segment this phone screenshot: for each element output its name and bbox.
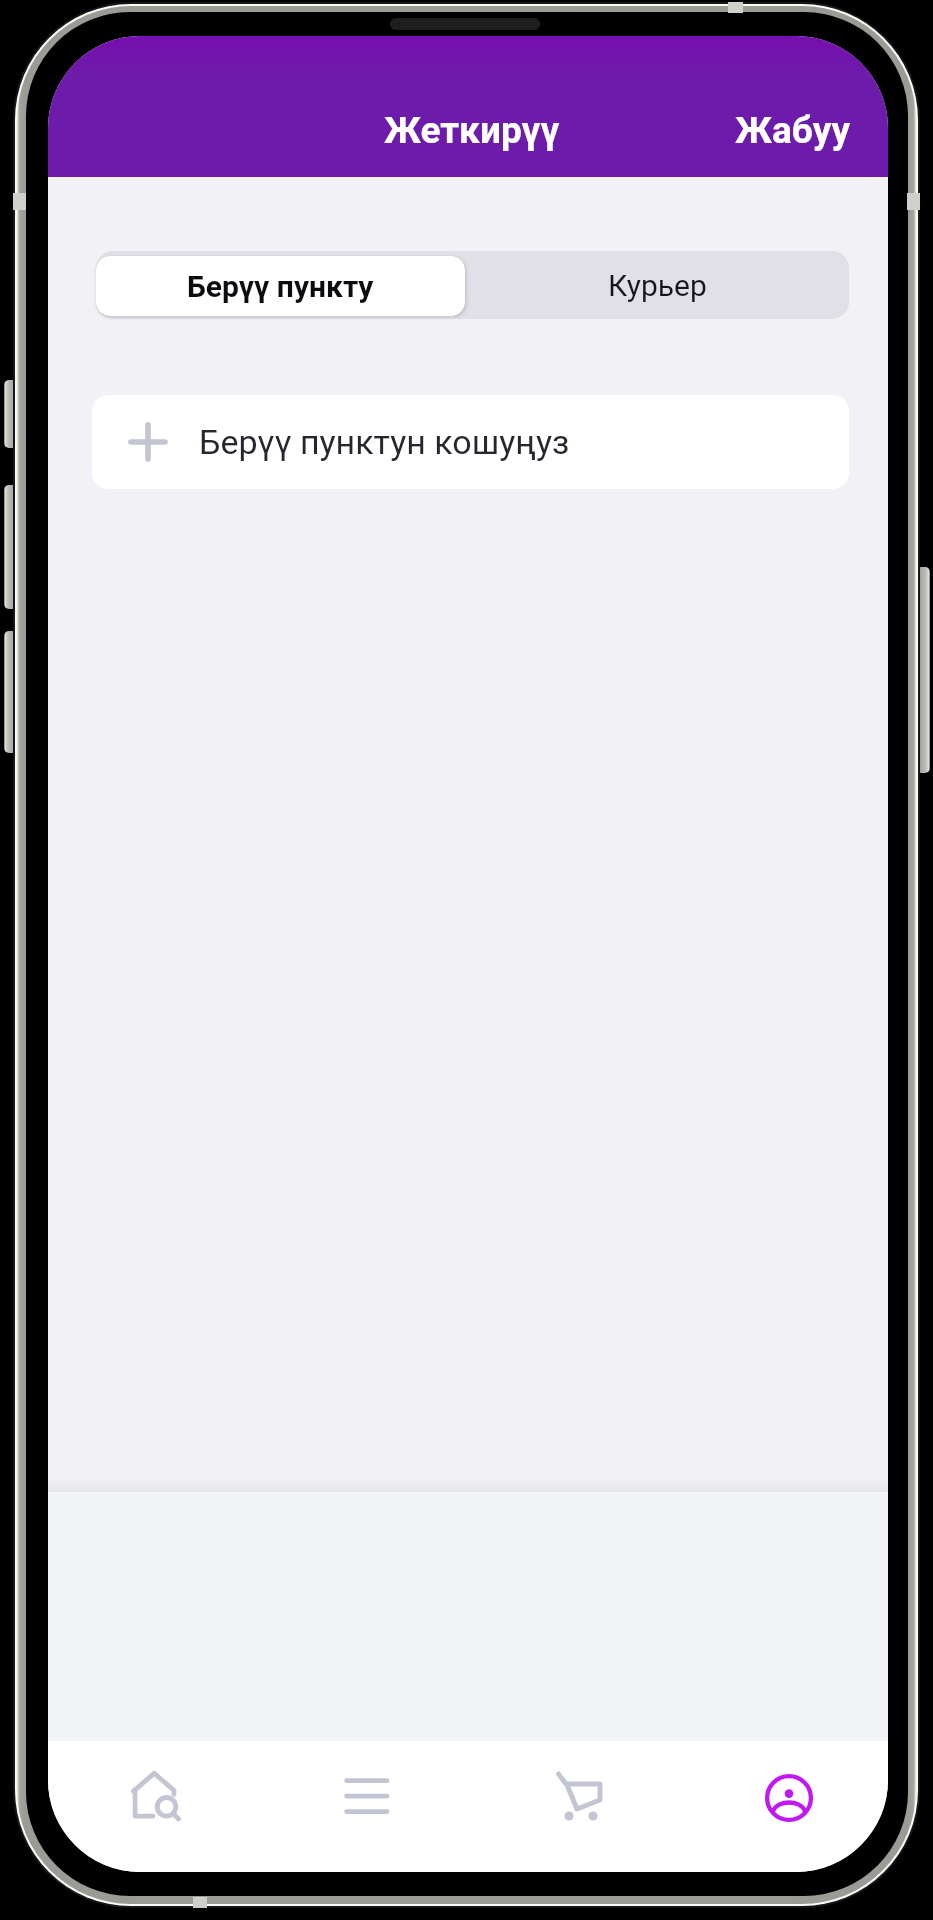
button[interactable]: Profile [678,1741,888,1872]
staticText: Курьер [608,268,707,303]
staticText: Берүү пункту [187,269,374,304]
button[interactable]: Берүү пунктун кошуңуз [92,395,849,489]
button[interactable]: Берүү пункту [96,256,465,316]
staticText: Берүү пунктун кошуңуз [199,422,570,462]
button[interactable]: Catalog [258,1741,468,1872]
staticText: Жеткирүү [384,109,560,152]
button[interactable]: Курьер [465,251,849,319]
staticText: Жабуу [735,109,851,152]
button[interactable]: Home search [48,1741,258,1872]
button[interactable]: Cart [468,1741,678,1872]
button[interactable]: Жабуу [710,94,876,167]
